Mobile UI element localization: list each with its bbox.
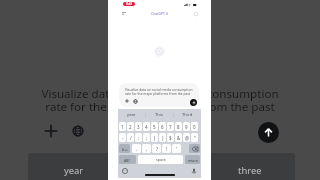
staticText: rate for the major platforms from the pa… — [125, 91, 191, 95]
button[interactable]: Send message — [190, 99, 197, 106]
staticText: " — [194, 135, 196, 141]
button[interactable]: , — [142, 144, 151, 153]
staticText: space — [156, 157, 166, 162]
staticText: #+= — [122, 147, 128, 151]
staticText: ) — [162, 135, 164, 141]
button[interactable]: #+= — [119, 144, 130, 153]
button[interactable]: ? — [152, 144, 161, 153]
button[interactable]: ( — [151, 133, 158, 142]
button[interactable]: - — [119, 133, 126, 142]
button[interactable]: Open sidebar — [119, 9, 128, 18]
staticText: Third — [182, 112, 193, 118]
staticText: return — [188, 158, 198, 162]
staticText: . — [136, 146, 138, 152]
staticText: ' — [176, 146, 177, 152]
button[interactable]: 8 — [175, 122, 182, 131]
button[interactable]: space — [138, 155, 183, 164]
staticText: 5 — [153, 124, 156, 130]
button[interactable]: 6 — [159, 122, 166, 131]
button[interactable]: Send — [258, 122, 279, 143]
staticText: 7 — [169, 124, 172, 130]
button[interactable]: New chat — [191, 9, 200, 18]
staticText: 3 — [137, 124, 140, 130]
staticText: @ — [185, 135, 189, 141]
staticText: Visualize data on social media consumpti… — [125, 87, 193, 91]
button[interactable]: 0 — [191, 122, 198, 131]
button[interactable]: . — [132, 144, 141, 153]
button[interactable]: 1 — [119, 122, 126, 131]
button[interactable]: return — [185, 155, 200, 164]
button[interactable]: ! — [162, 144, 171, 153]
staticText: three — [238, 164, 262, 177]
button[interactable]: Third — [174, 110, 201, 120]
button[interactable]: three — [204, 153, 295, 180]
staticText: year — [64, 164, 84, 177]
button[interactable]: $ — [167, 133, 174, 142]
button[interactable]: / — [127, 133, 134, 142]
button[interactable]: 5 — [151, 122, 158, 131]
staticText: $ — [169, 135, 172, 141]
staticText: & — [177, 135, 181, 141]
button[interactable]: " — [191, 133, 198, 142]
staticText: 8 — [177, 124, 180, 130]
staticText: Visualize data on social media consumpti… — [41, 86, 279, 114]
button[interactable]: ABC — [119, 155, 136, 164]
button[interactable]: : — [135, 133, 142, 142]
button[interactable]: Add — [125, 99, 129, 103]
staticText: - — [122, 135, 124, 141]
staticText: ; — [146, 135, 148, 141]
button[interactable]: year — [118, 110, 145, 120]
button[interactable]: Add attachment — [42, 122, 60, 140]
button[interactable]: Visualize data on social media consumpti… — [119, 83, 199, 107]
staticText: 9 — [185, 124, 188, 130]
button[interactable]: year — [28, 153, 119, 180]
staticText: / — [130, 135, 132, 141]
button[interactable]: @ — [183, 133, 190, 142]
button[interactable]: 4 — [143, 122, 150, 131]
staticText: ABC — [124, 158, 131, 162]
staticText: ( — [154, 135, 156, 141]
button[interactable]: ; — [143, 133, 150, 142]
staticText: ChatGPT 4 — [151, 11, 168, 16]
staticText: 1 — [121, 124, 124, 130]
staticText: 2 — [129, 124, 132, 130]
button[interactable]: Dictation — [191, 168, 197, 174]
staticText: year — [127, 112, 136, 118]
button[interactable]: ) — [159, 133, 166, 142]
button[interactable]: Delete — [189, 144, 200, 153]
staticText: : — [138, 135, 140, 141]
staticText: , — [146, 146, 148, 152]
staticText: 4 — [145, 124, 148, 130]
button[interactable]: Web search — [133, 99, 138, 104]
button[interactable]: 3 — [135, 122, 142, 131]
staticText: 0 — [193, 124, 196, 130]
button[interactable]: This — [146, 110, 173, 120]
button[interactable]: 7 — [167, 122, 174, 131]
button[interactable]: ' — [172, 144, 181, 153]
button[interactable]: Search the web — [69, 122, 87, 140]
staticText: 6 — [161, 124, 164, 130]
button[interactable]: & — [175, 133, 182, 142]
button[interactable]: 9 — [183, 122, 190, 131]
staticText: ! — [166, 146, 168, 152]
staticText: This — [155, 112, 164, 118]
staticText: ? — [156, 146, 158, 152]
button[interactable]: 2 — [127, 122, 134, 131]
staticText: 9:41 — [126, 2, 133, 6]
button[interactable]: Emoji keyboard — [122, 168, 128, 174]
button[interactable]: ChatGPT 4 — [151, 11, 168, 16]
